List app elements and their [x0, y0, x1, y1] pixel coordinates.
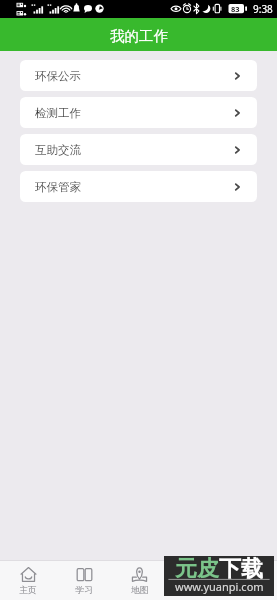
button[interactable]: 互助交流: [20, 134, 257, 165]
staticText: 学习: [75, 585, 93, 596]
staticText: 元皮: [175, 555, 219, 583]
staticText: 环保公示: [35, 69, 81, 83]
staticText: 下载: [219, 555, 263, 583]
staticText: 83: [231, 4, 240, 14]
staticText: 互助交流: [35, 143, 81, 157]
staticText: 地图: [131, 585, 149, 596]
button[interactable]: 环保管家: [20, 171, 257, 202]
staticText: 我的工作: [110, 27, 168, 45]
button[interactable]: 环保公示: [20, 60, 257, 91]
button[interactable]: 地图: [112, 560, 167, 600]
button[interactable]: 资讯: [167, 560, 222, 600]
staticText: 检测工作: [35, 106, 81, 120]
button[interactable]: 主页: [0, 560, 56, 600]
staticText: www.yuanpi.com: [175, 579, 264, 594]
staticText: 主页: [19, 585, 37, 596]
staticText: 环保管家: [35, 180, 81, 194]
button[interactable]: 学习: [56, 560, 112, 600]
staticText: 我的: [241, 585, 259, 596]
button[interactable]: 检测工作: [20, 97, 257, 128]
staticText: 9:38: [253, 2, 273, 16]
staticText: 资讯: [186, 585, 204, 596]
button[interactable]: 我的: [222, 560, 277, 600]
